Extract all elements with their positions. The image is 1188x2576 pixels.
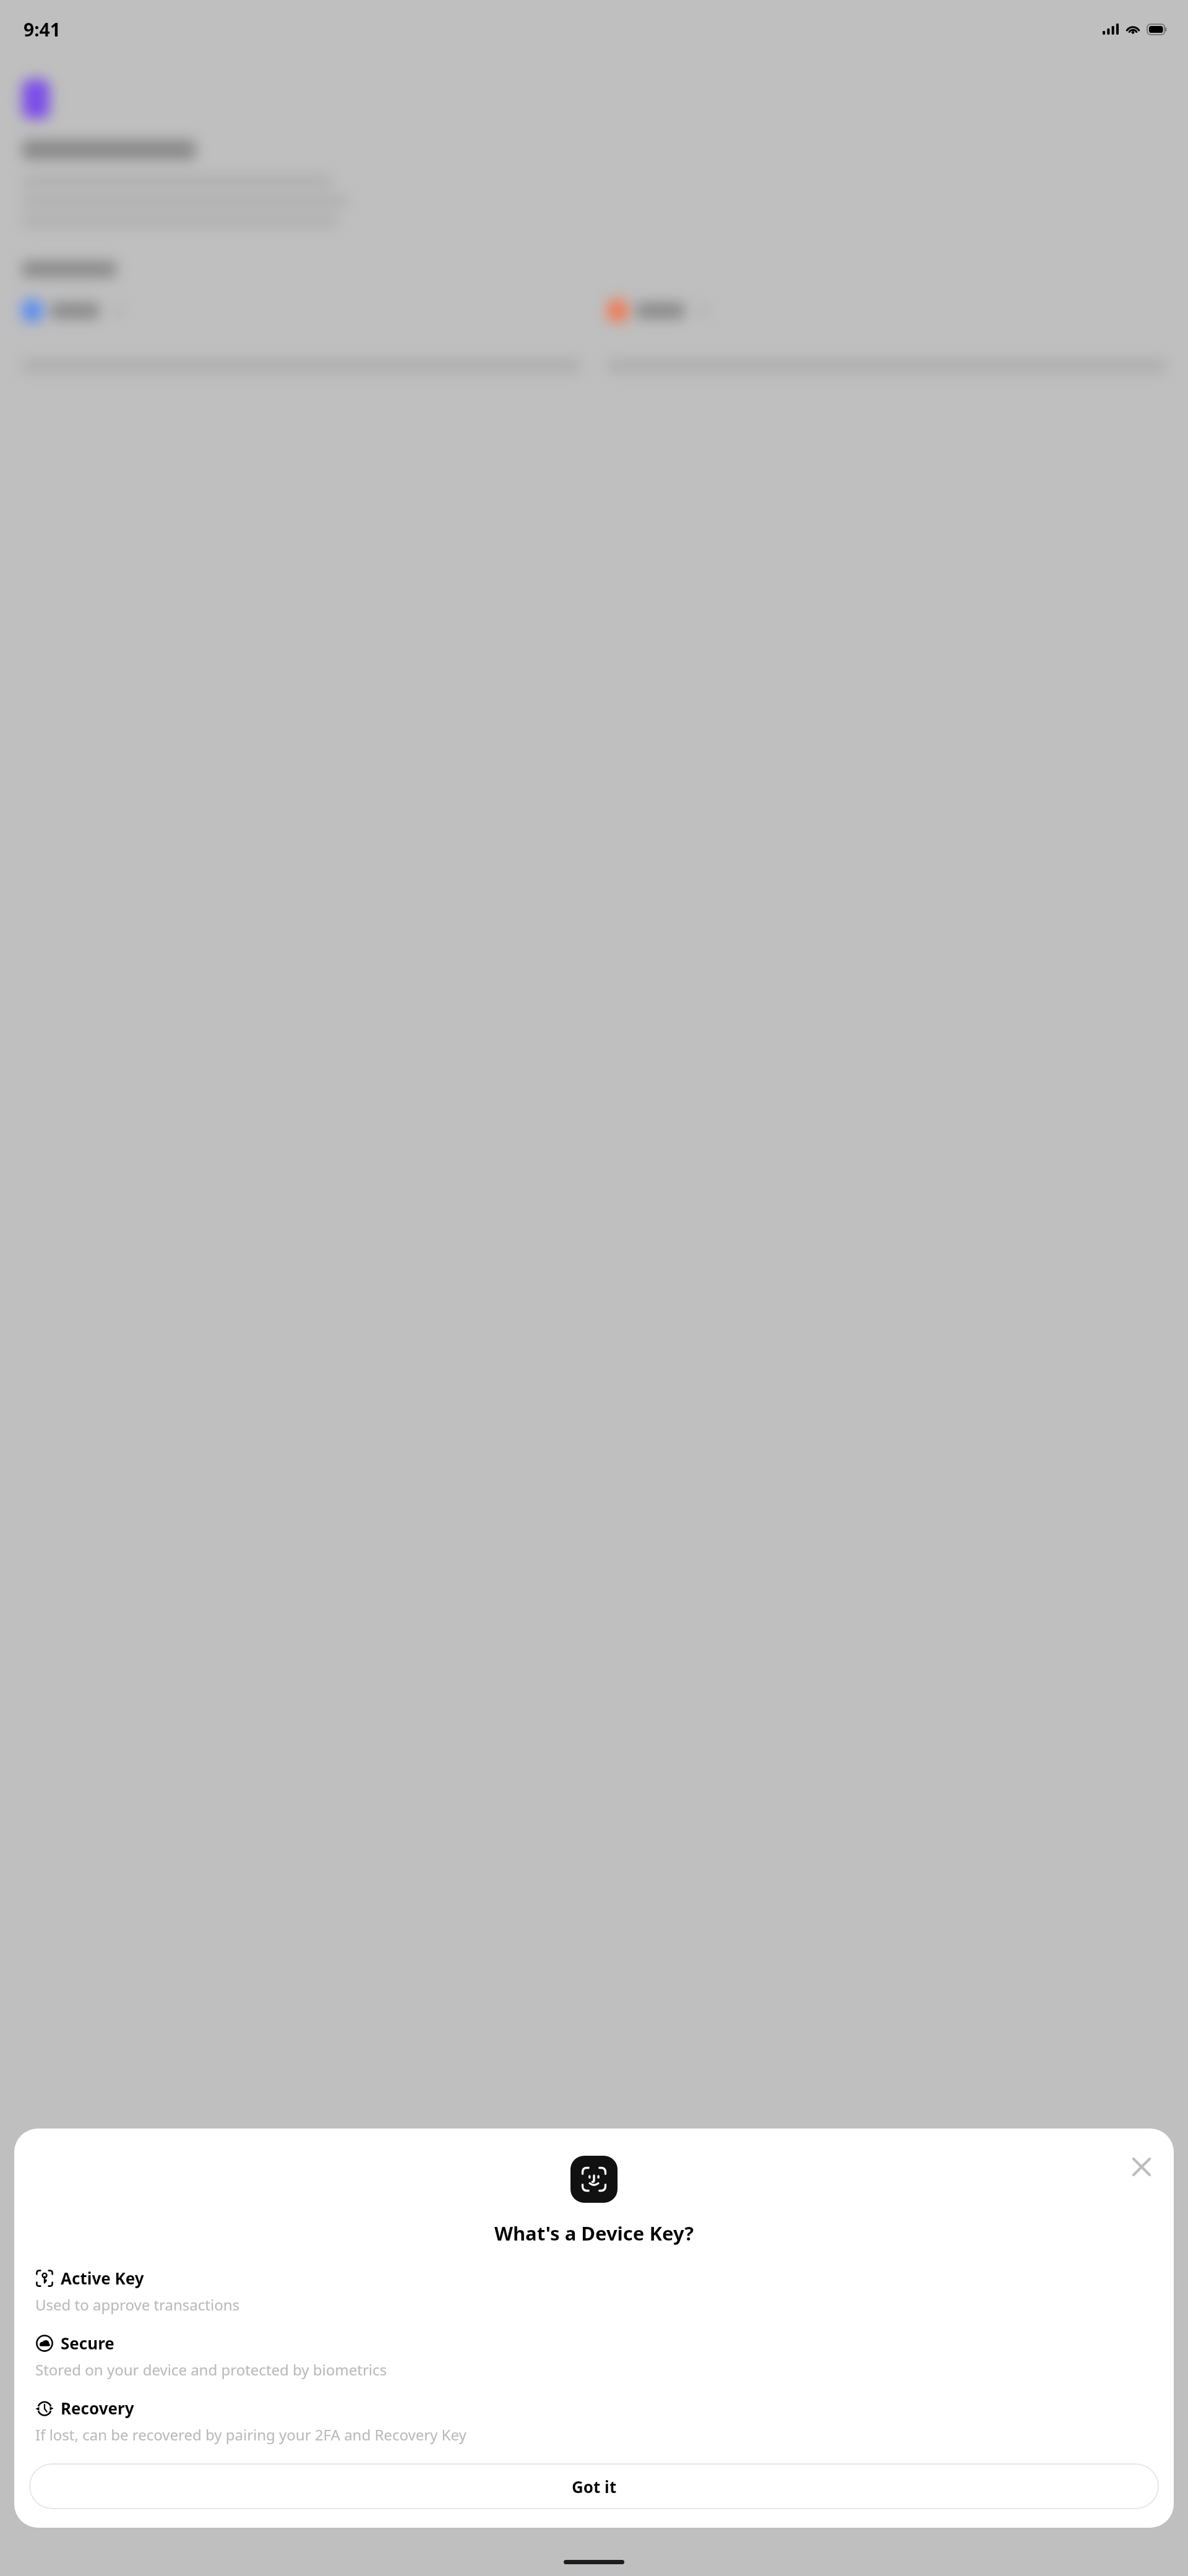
staticText: Used to approve transactions xyxy=(35,2294,239,2315)
staticText: 9:41 xyxy=(24,17,61,42)
staticText: If lost, can be recovered by pairing you… xyxy=(35,2424,467,2445)
staticText: Stored on your device and protected by b… xyxy=(35,2359,387,2380)
staticText: Recovery xyxy=(61,2397,134,2419)
staticText: Got it xyxy=(572,2476,617,2497)
staticText: Secure xyxy=(61,2332,114,2354)
staticText: Active Key xyxy=(61,2267,144,2289)
button[interactable]: Got it xyxy=(29,2463,1159,2509)
staticText: What's a Device Key? xyxy=(14,2220,1174,2246)
button[interactable]: Close xyxy=(1126,2151,1158,2183)
